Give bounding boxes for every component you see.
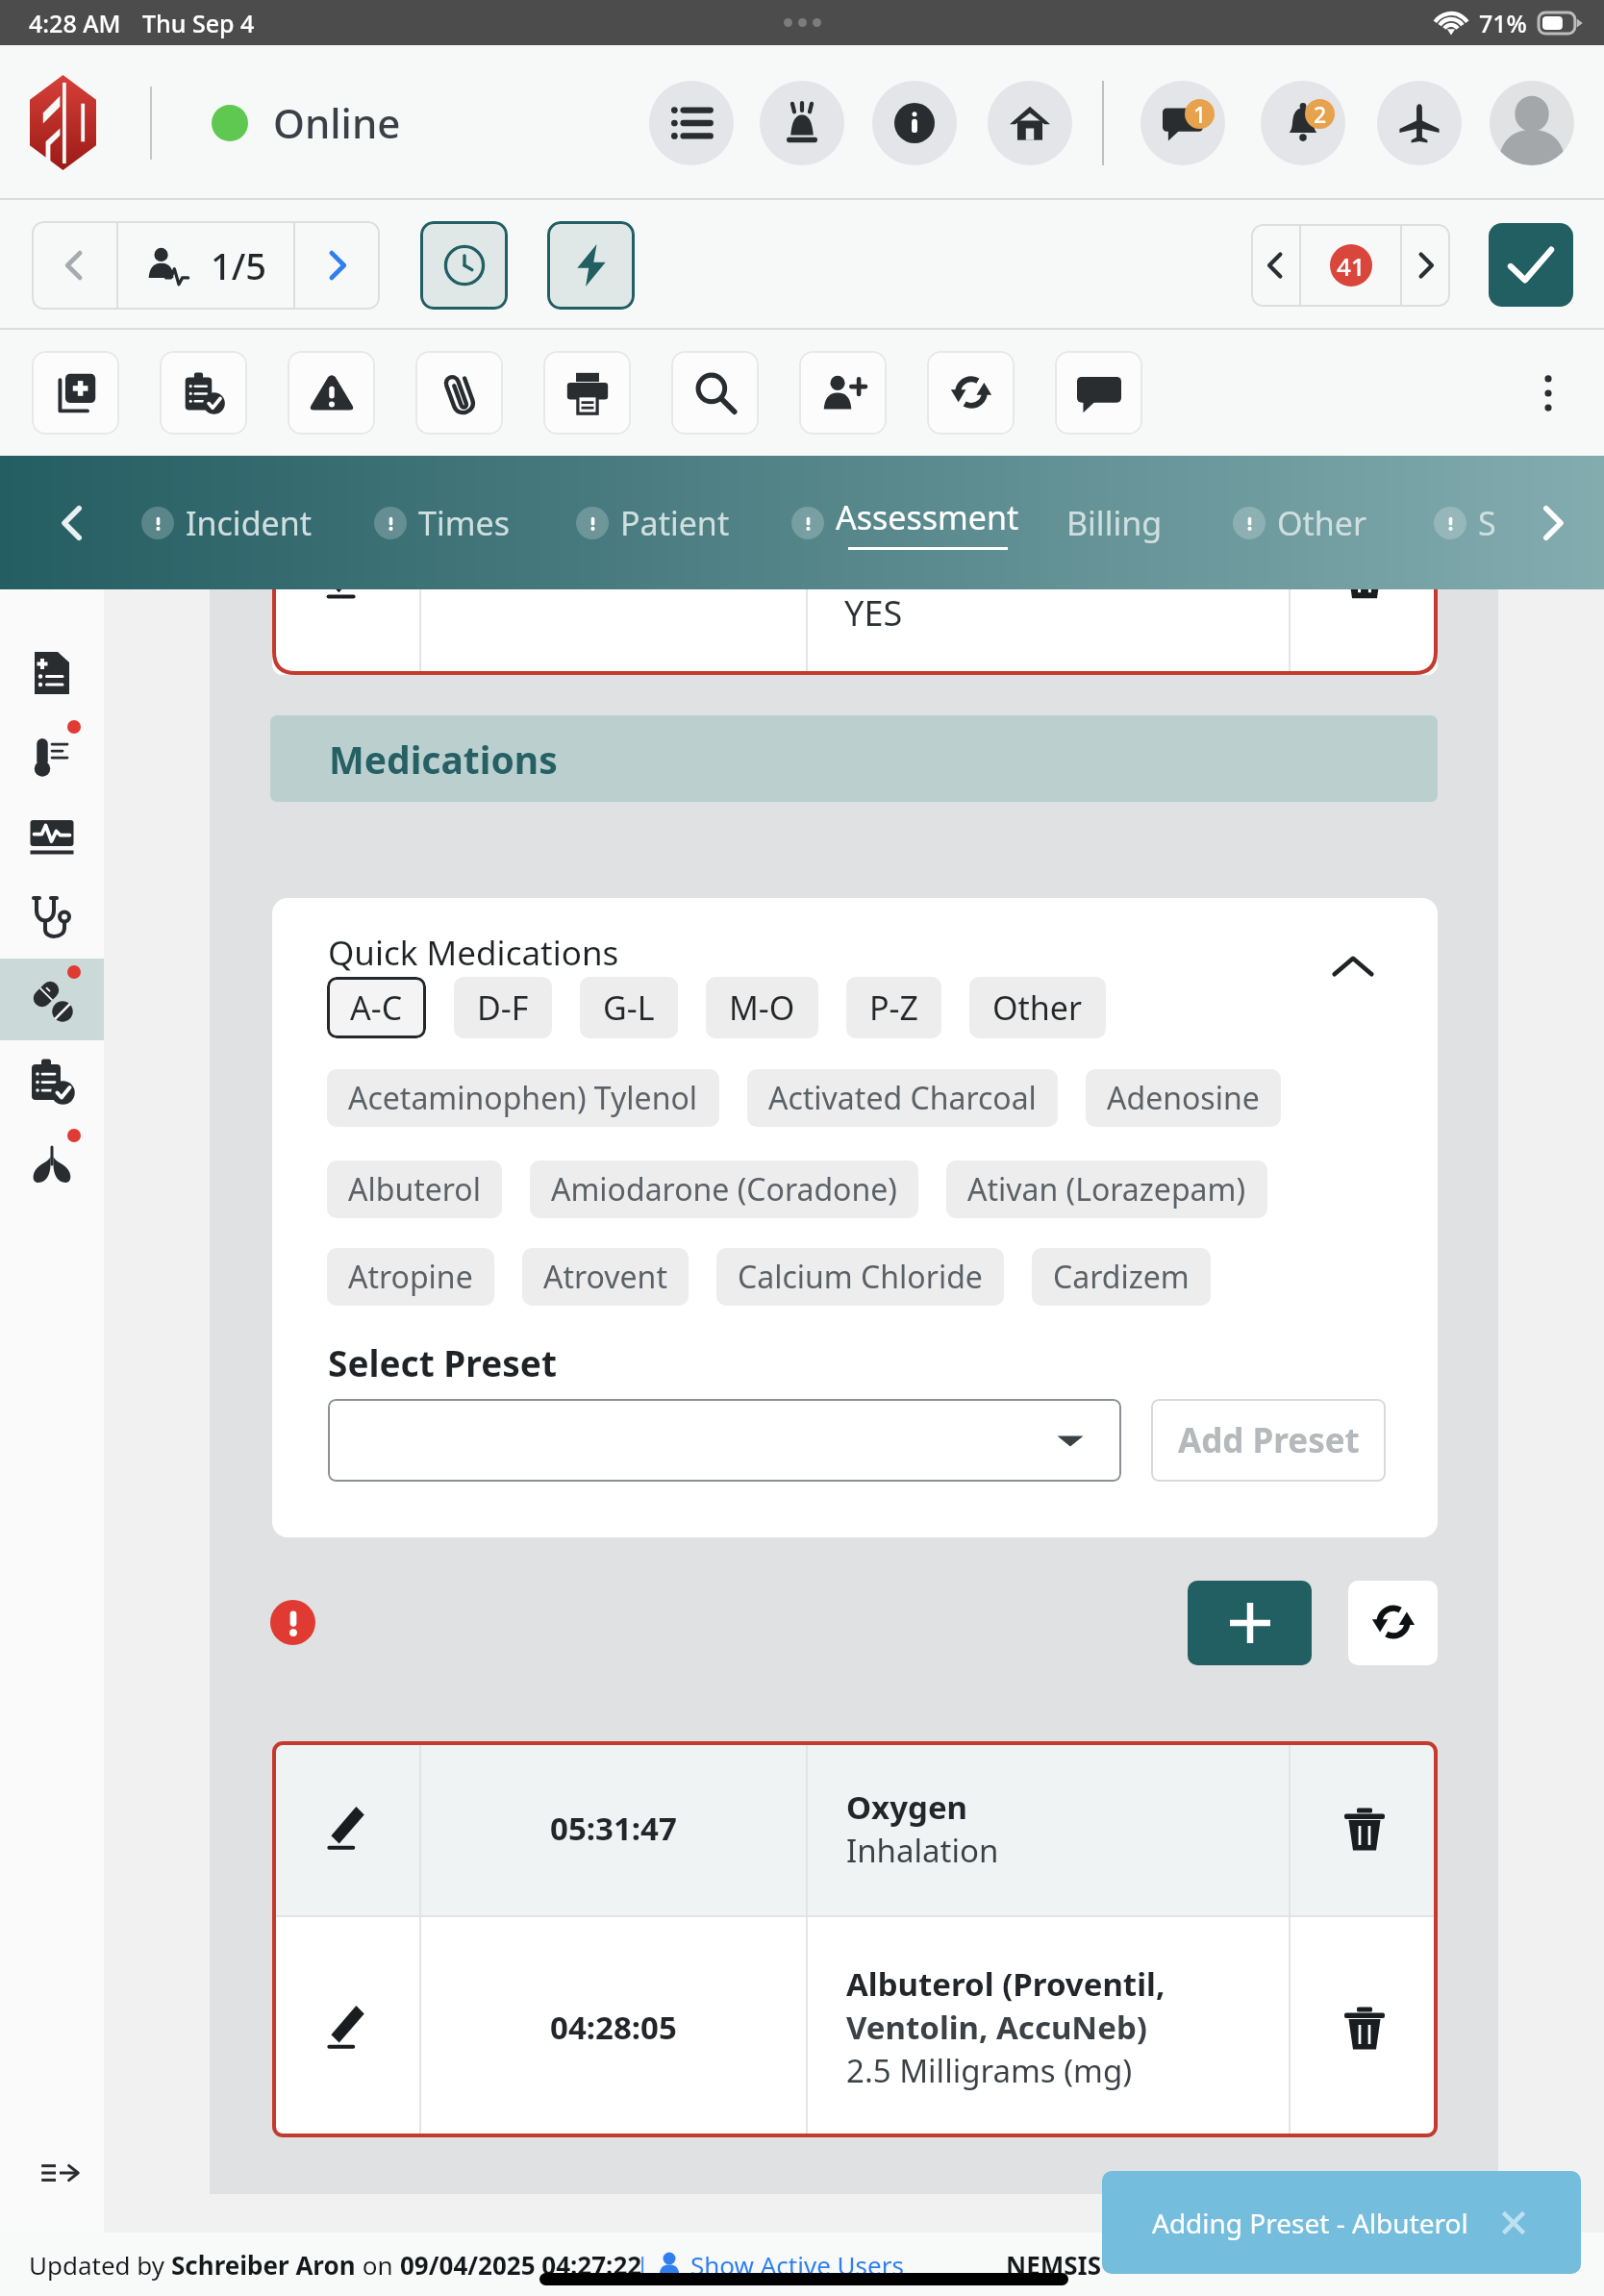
button[interactable]: S [1434, 456, 1496, 589]
staticText: A-C [350, 986, 403, 1030]
button[interactable]: Alerts [288, 351, 375, 435]
button[interactable]: Add Preset [1151, 1399, 1386, 1482]
staticText: Atrovent [543, 1256, 667, 1298]
button[interactable]: Add medication [1188, 1581, 1312, 1665]
button[interactable]: Billing [1066, 456, 1163, 589]
button[interactable]: Medications [0, 959, 104, 1040]
staticText: 41 [1337, 249, 1366, 283]
button[interactable]: Assessment [791, 456, 1019, 589]
staticText: Adding Preset - Albuterol [1152, 2205, 1468, 2241]
staticText: Oxygen [846, 1785, 968, 1829]
button[interactable]: D-F [454, 977, 552, 1038]
button[interactable]: Adenosine [1086, 1069, 1281, 1127]
staticText: Select Preset [328, 1338, 557, 1386]
button[interactable]: Vitals [0, 713, 104, 795]
button[interactable]: Profile [1490, 81, 1574, 165]
button[interactable]: Comments [1055, 351, 1142, 435]
button[interactable]: Dispatch [760, 81, 844, 165]
button[interactable]: Edit Oxygen [272, 1741, 419, 1915]
staticText: Other [1277, 501, 1367, 545]
staticText: 4:28 AM [29, 7, 121, 39]
button[interactable]: Atropine [327, 1248, 494, 1306]
button[interactable]: Times [420, 221, 508, 310]
button[interactable]: Dismiss [1496, 2206, 1531, 2240]
button[interactable]: Amiodarone (Coradone) [530, 1160, 918, 1218]
button[interactable]: Expand navigation [8, 2127, 112, 2219]
button[interactable]: Search [671, 351, 759, 435]
button[interactable]: Incident [141, 456, 313, 589]
button[interactable]: Airplane mode [1377, 81, 1462, 165]
button[interactable]: Previous tabs [38, 456, 106, 589]
button[interactable]: New record [32, 351, 119, 435]
staticText: Billing [1066, 501, 1163, 545]
staticText: 05:31:47 [550, 1807, 677, 1850]
button[interactable]: Times [374, 456, 510, 589]
button[interactable]: More options [1517, 362, 1579, 424]
button[interactable]: Assessment [0, 877, 104, 959]
staticText: NEMSIS [1006, 2248, 1101, 2282]
button[interactable]: M-O [706, 977, 818, 1038]
button[interactable]: Quick actions [547, 221, 635, 310]
button[interactable]: Show Active Users [690, 2248, 904, 2282]
button[interactable]: Atrovent [522, 1248, 689, 1306]
button[interactable]: Other [1233, 456, 1367, 589]
button[interactable]: 1/5 [118, 221, 293, 310]
button[interactable]: Attachments [415, 351, 503, 435]
button[interactable]: Home logo [30, 75, 96, 170]
button[interactable]: Next patient [295, 221, 380, 310]
staticText: Thu Sep 4 [142, 7, 255, 39]
button[interactable]: Delete Oxygen [1291, 1741, 1438, 1915]
button[interactable]: Activated Charcoal [747, 1069, 1058, 1127]
button[interactable]: Edit Albuterol (Proventil, [272, 1917, 419, 2137]
staticText: Other [992, 986, 1083, 1030]
staticText: Quick Medications [328, 930, 619, 976]
staticText: Ventolin, AccuNeb) [846, 2006, 1147, 2049]
button[interactable]: Previous issue [1251, 224, 1299, 307]
button[interactable]: Collapse quick medications [1324, 938, 1382, 996]
staticText: Adenosine [1107, 1077, 1260, 1119]
button[interactable]: Sync [927, 351, 1015, 435]
button[interactable]: Patient [576, 456, 730, 589]
button[interactable]: Narrative [0, 632, 104, 713]
button[interactable]: Messages [1140, 81, 1225, 165]
staticText: S [1478, 501, 1496, 545]
button[interactable]: 41 [1301, 224, 1400, 307]
staticText: Updated by [29, 2248, 171, 2282]
staticText: Ativan (Lorazepam) [967, 1168, 1246, 1210]
button[interactable]: Previous patient [32, 221, 116, 310]
button[interactable]: Validate [1489, 223, 1573, 307]
button[interactable]: Airway [0, 1122, 104, 1204]
button[interactable]: Albuterol [327, 1160, 502, 1218]
button[interactable]: Other [969, 977, 1106, 1038]
button[interactable]: Cardiac monitor [0, 795, 104, 877]
button[interactable]: P-Z [846, 977, 941, 1038]
staticText: Patient [620, 501, 730, 545]
button[interactable]: Checklist [160, 351, 247, 435]
staticText: 09/04/2025 04:27:22 [400, 2248, 642, 2282]
staticText: 71% [1479, 7, 1527, 39]
button[interactable]: Next issue [1402, 224, 1450, 307]
button[interactable]: Calcium Chloride [716, 1248, 1004, 1306]
button[interactable]: Procedures [0, 1040, 104, 1122]
button[interactable]: Adding Preset - Albuterol [1102, 2171, 1581, 2274]
button[interactable]: Select preset [328, 1399, 1121, 1482]
staticText: Assessment [836, 495, 1019, 539]
staticText: Inhalation [846, 1829, 999, 1872]
staticText: Activated Charcoal [768, 1077, 1037, 1119]
button[interactable]: Refresh medications [1348, 1581, 1438, 1665]
button[interactable]: Home [988, 81, 1072, 165]
button[interactable]: A-C [327, 977, 426, 1038]
button[interactable]: Acetaminophen) Tylenol [327, 1069, 719, 1127]
button[interactable]: G-L [580, 977, 678, 1038]
button[interactable]: More tabs [1519, 456, 1587, 589]
button[interactable]: Add crew [799, 351, 887, 435]
button[interactable]: Cardizem [1032, 1248, 1211, 1306]
button[interactable]: Information [872, 81, 957, 165]
staticText: Cardizem [1053, 1256, 1190, 1298]
button[interactable]: Print [543, 351, 631, 435]
button[interactable]: Ativan (Lorazepam) [946, 1160, 1267, 1218]
button[interactable]: Delete Albuterol (Proventil, [1291, 1917, 1438, 2137]
button[interactable]: Task list [649, 81, 734, 165]
button[interactable]: Notifications [1261, 81, 1345, 165]
staticText: Albuterol [348, 1168, 481, 1210]
